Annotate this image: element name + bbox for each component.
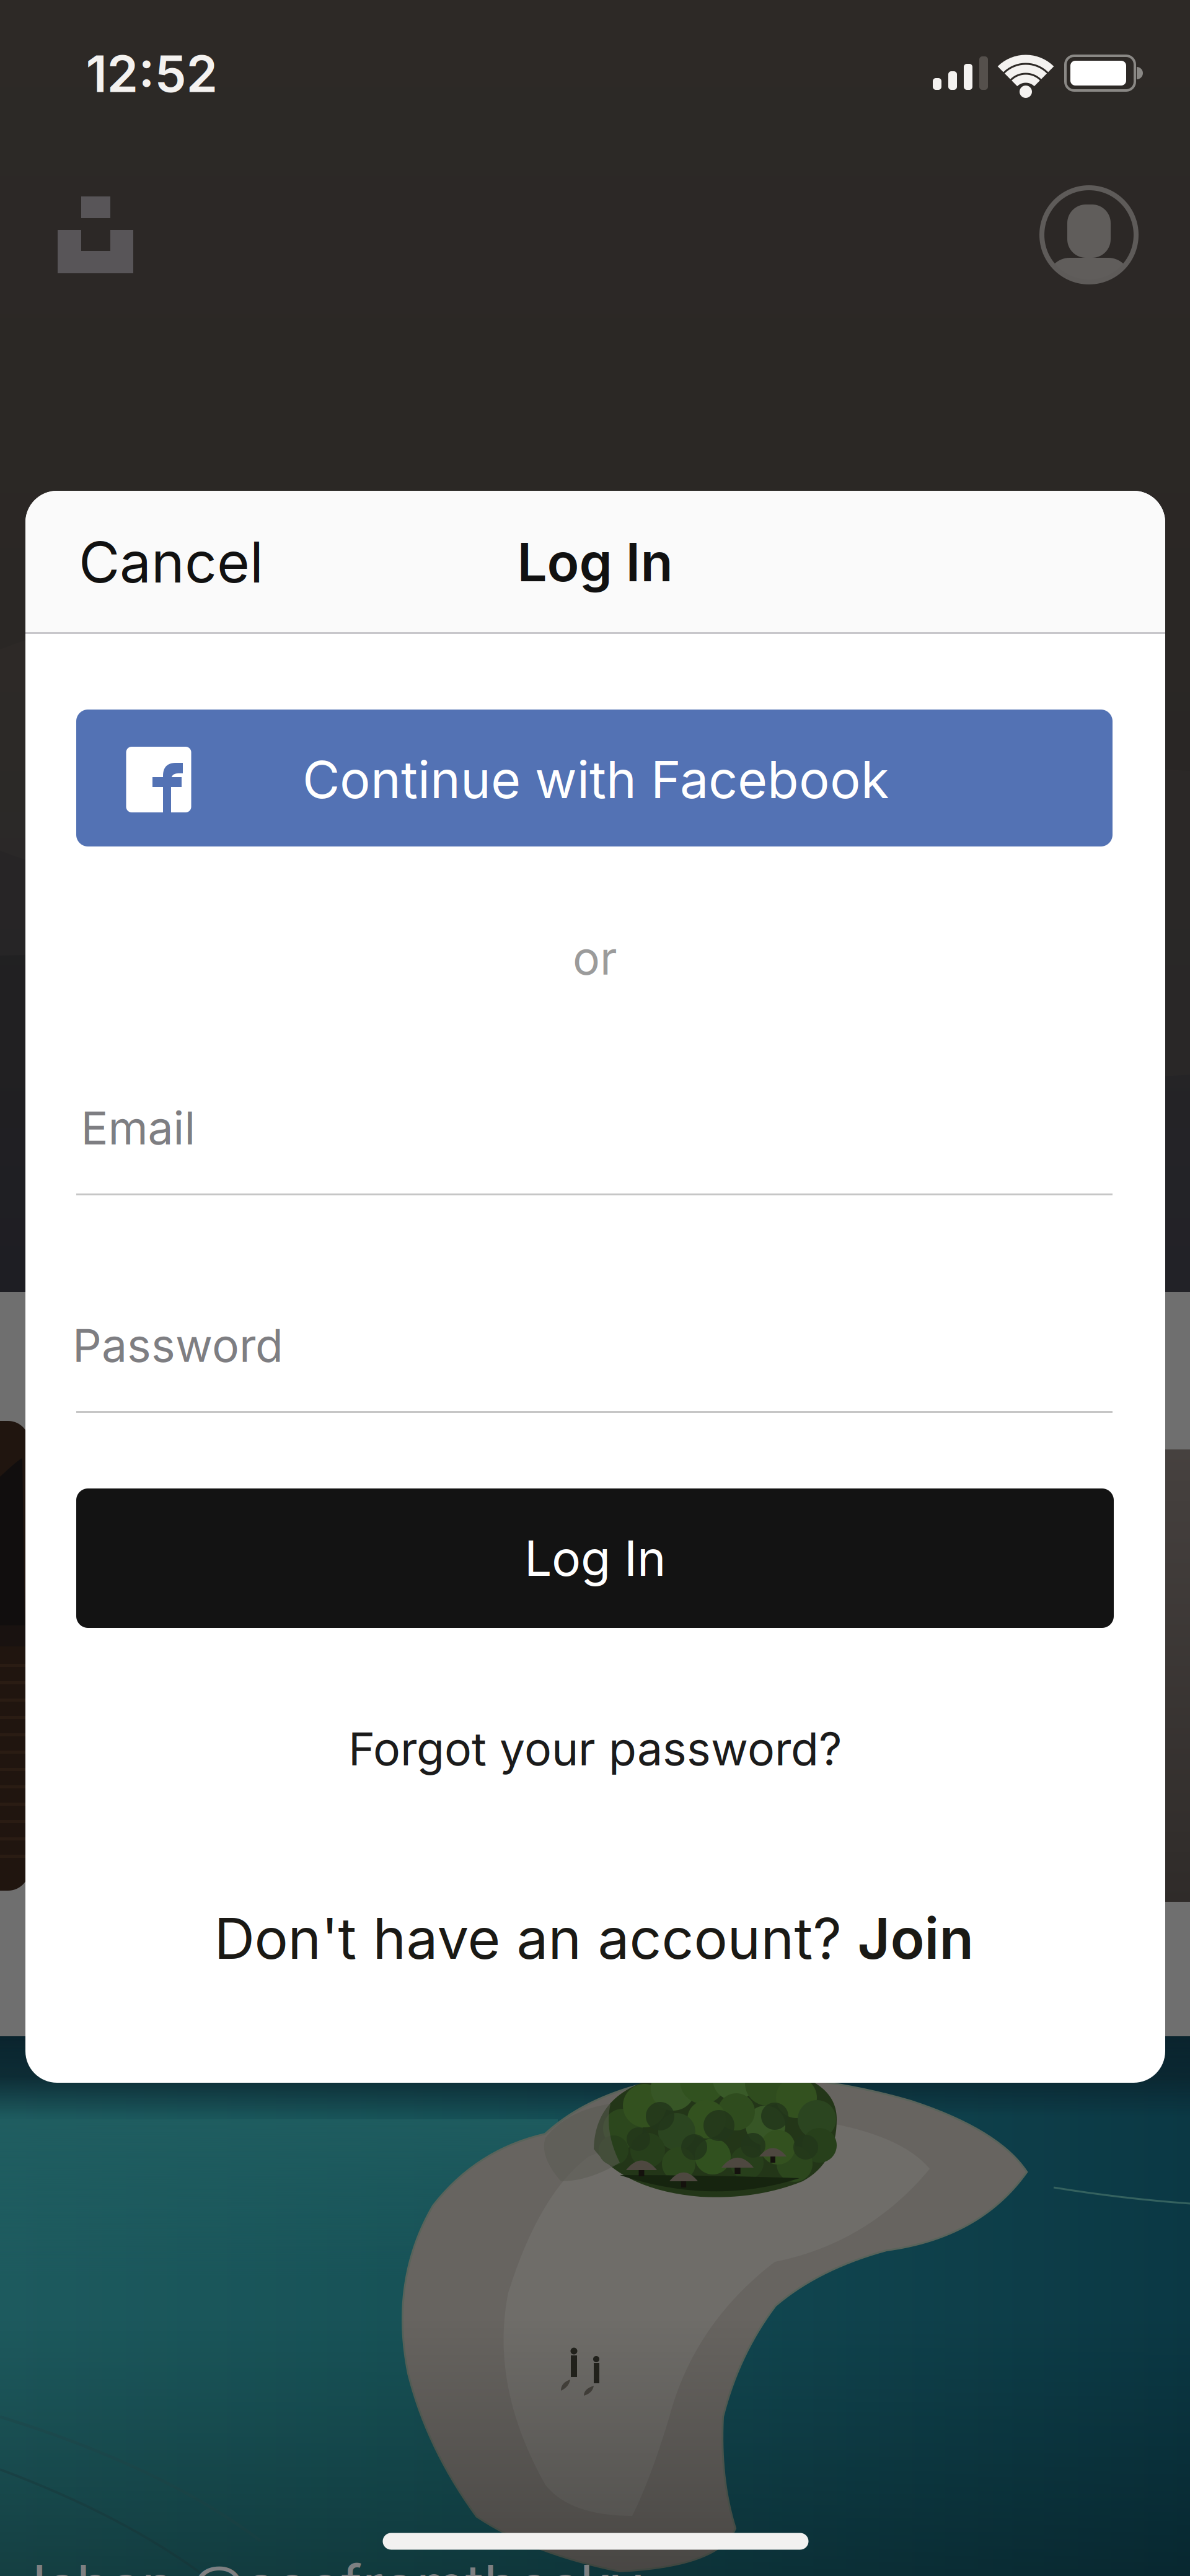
staticText: Log In [524,1529,666,1587]
staticText: Don't have an account? Join [214,1905,973,1972]
staticText: Continue with Facebook [302,749,889,810]
staticText: Email [81,1101,196,1155]
staticText: or [573,931,617,985]
staticText: Ishan @seefromthesky [32,2552,642,2576]
button[interactable]: Continue with Facebook [76,710,1113,846]
button[interactable]: Cancel [79,529,263,595]
staticText: Log In [517,531,673,593]
button[interactable]: Log In [76,1488,1114,1628]
staticText: Cancel [79,529,263,595]
staticText: 12:52 [86,44,218,103]
staticText: Password [73,1318,283,1372]
staticText: Forgot your password? [348,1722,842,1776]
button[interactable]: Password [76,1302,1113,1413]
button[interactable]: Forgot your password? [348,1722,842,1776]
button[interactable]: Email [76,1084,1113,1196]
button[interactable]: Don't have an account? Join [214,1905,973,1972]
